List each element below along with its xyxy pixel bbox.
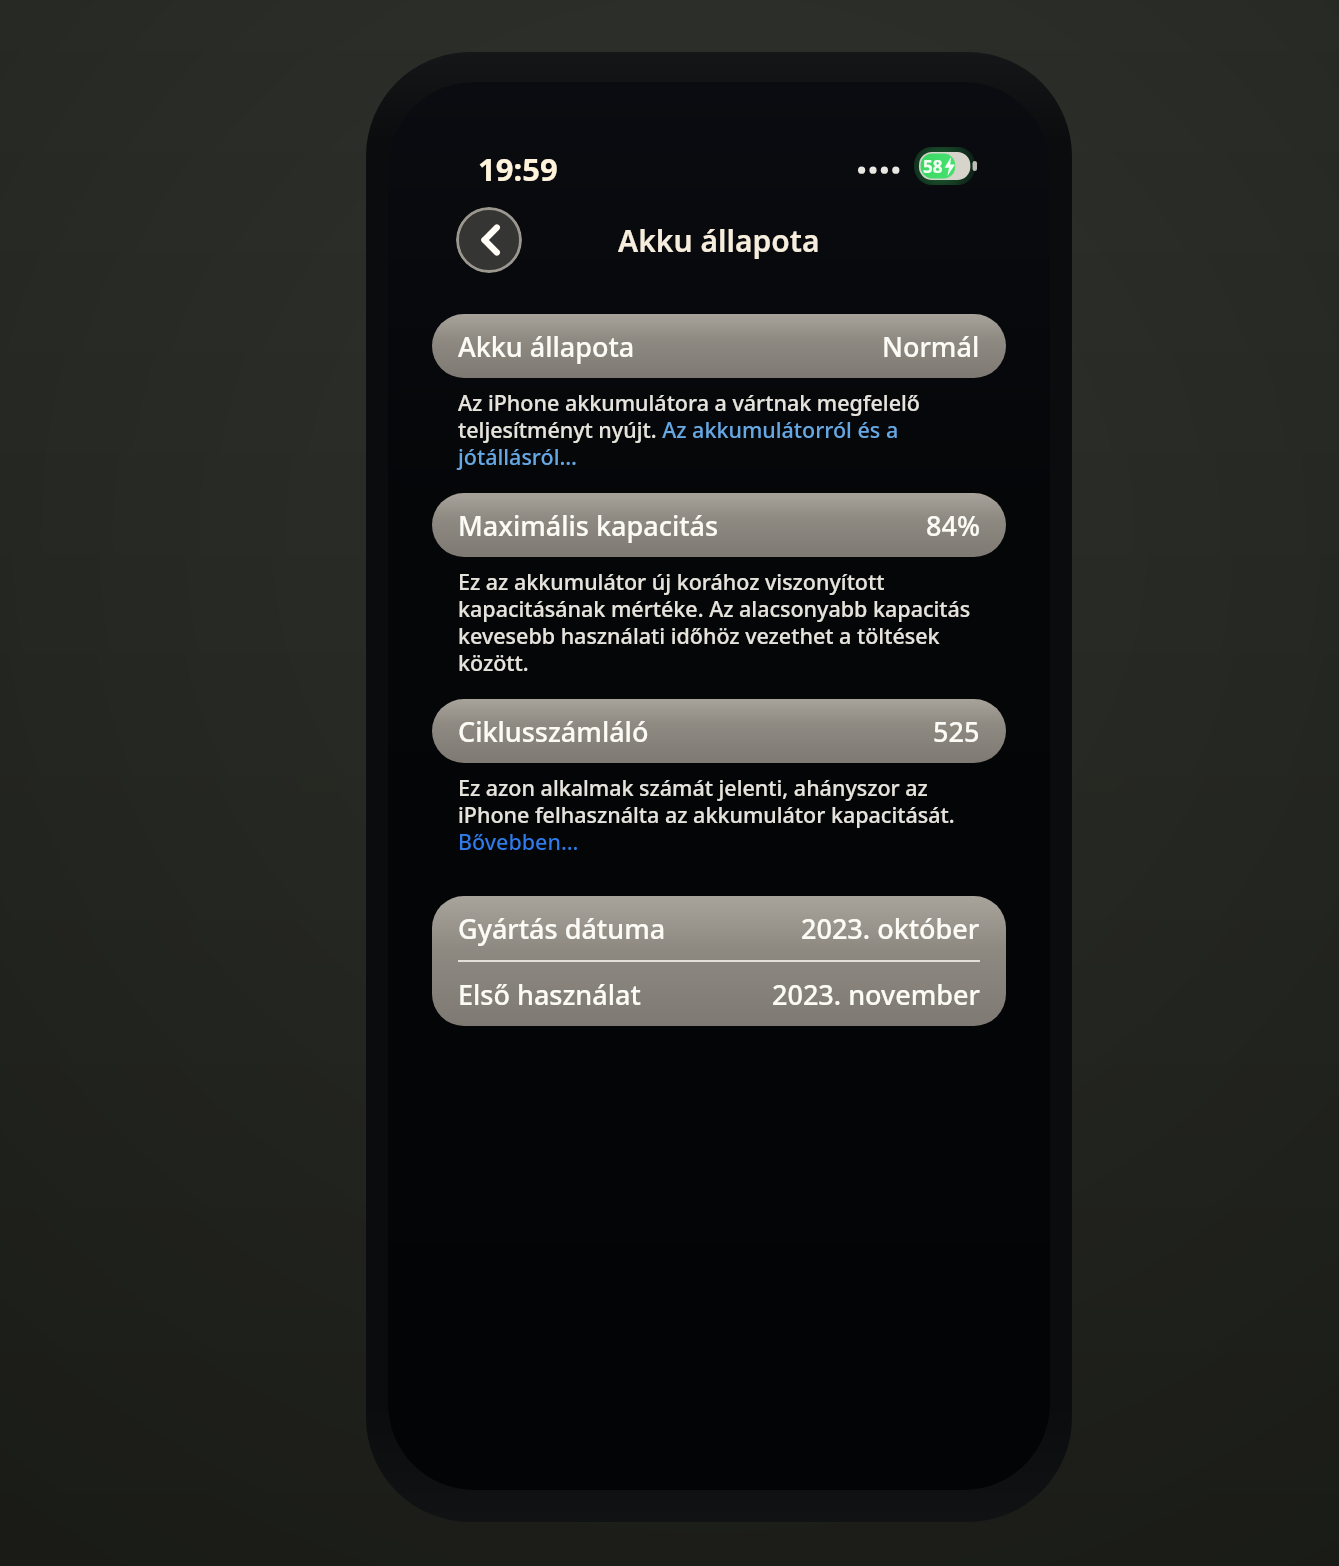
button[interactable]: Back [456, 207, 522, 273]
staticText: Első használat [458, 976, 641, 1013]
other: Battery 58 percent charging [919, 152, 977, 180]
staticText: Akku állapota [618, 220, 820, 261]
staticText: Ez azon alkalmak számát jelenti, ahánysz… [458, 773, 992, 856]
button[interactable]: Maximális kapacitás [432, 493, 1006, 557]
button[interactable]: Első használat [432, 962, 1006, 1026]
staticText: Az iPhone akkumulátora a vártnak megfele… [458, 388, 992, 471]
button[interactable]: Gyártás dátuma [432, 896, 1006, 960]
button[interactable]: Akku állapota [432, 314, 1006, 378]
staticText: 84% [926, 507, 980, 544]
staticText: Ciklusszámláló [458, 713, 649, 750]
staticText: 525 [933, 713, 980, 750]
staticText: Gyártás dátuma [458, 910, 666, 947]
staticText: 2023. október [801, 910, 980, 947]
button[interactable]: Maximális kapacitás [432, 493, 1006, 557]
staticText: Akku állapota [458, 328, 635, 365]
button[interactable]: Akku állapota [432, 314, 1006, 378]
button[interactable]: Ciklusszámláló [432, 699, 1006, 763]
button[interactable]: Ciklusszámláló [432, 699, 1006, 763]
staticText: 19:59 [478, 148, 558, 190]
staticText: 58 [923, 155, 943, 178]
staticText: Normál [882, 328, 980, 365]
staticText: 2023. november [772, 976, 980, 1013]
staticText: Maximális kapacitás [458, 507, 719, 544]
button[interactable]: Gyártás dátuma [432, 896, 1006, 1026]
staticText: Ez az akkumulátor új korához viszonyítot… [458, 567, 992, 677]
